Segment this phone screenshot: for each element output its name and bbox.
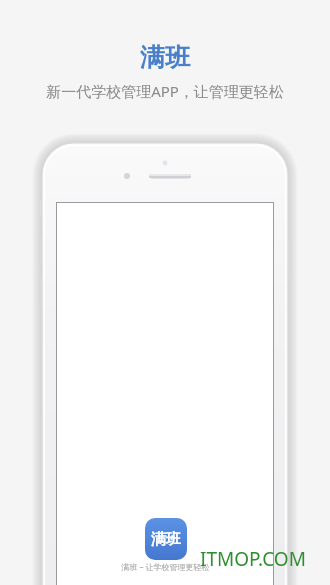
staticText: 新一代学校管理APP，让管理更轻松: [46, 81, 284, 101]
staticText: 满班: [151, 530, 181, 549]
staticText: ITMOP.COM: [200, 546, 306, 572]
button[interactable]: 满班 app icon: [145, 518, 187, 560]
staticText: 满班: [140, 42, 190, 73]
staticText: 满班 – 让学校管理更轻松: [121, 561, 210, 572]
